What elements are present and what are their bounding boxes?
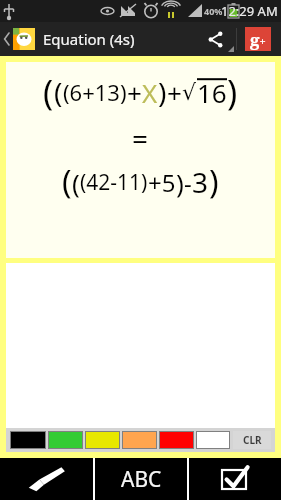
staticText: Equation (4s) — [43, 29, 135, 49]
staticText: ) — [158, 73, 167, 111]
staticText: ( — [62, 160, 72, 204]
staticText: ( — [54, 73, 63, 111]
button[interactable]: Draw — [0, 458, 93, 500]
staticText: ) — [209, 160, 219, 204]
staticText: +5 — [148, 166, 176, 199]
staticText: - — [184, 166, 192, 199]
button[interactable]: Colour 4 — [159, 431, 194, 449]
staticText: ABC — [121, 465, 162, 494]
staticText: + — [167, 75, 182, 110]
button[interactable]: ABC — [95, 458, 187, 500]
staticText: 3 — [192, 163, 209, 201]
staticText: ( — [72, 165, 80, 200]
staticText: ) — [176, 165, 184, 200]
button[interactable]: CLR — [233, 431, 271, 449]
button[interactable]: Colour 5 — [196, 431, 230, 449]
staticText: (42-11) — [80, 168, 148, 197]
staticText: ) — [227, 69, 238, 115]
staticText: + — [127, 75, 142, 110]
button[interactable]: ( — [6, 62, 275, 258]
staticText: X — [142, 75, 158, 110]
staticText: CLR — [243, 433, 262, 447]
staticText: 16 — [197, 75, 227, 110]
button[interactable]: Colour 0 — [10, 431, 46, 449]
staticText: 12:29 AM — [221, 2, 278, 20]
staticText: 40% — [204, 5, 223, 17]
button[interactable]: Share — [194, 24, 236, 54]
button[interactable]: Colour 2 — [85, 431, 120, 449]
button[interactable]: Colour 3 — [122, 431, 157, 449]
button[interactable]: Colour 1 — [48, 431, 83, 449]
staticText: = — [132, 119, 149, 157]
button[interactable]: Google Plus — [237, 22, 279, 56]
staticText: g+ — [250, 28, 266, 51]
button[interactable]: Up — [0, 24, 37, 54]
staticText: √ — [182, 80, 197, 106]
staticText: ( — [43, 69, 54, 115]
staticText: (6+13) — [63, 77, 127, 107]
button[interactable]: Submit — [189, 458, 281, 500]
